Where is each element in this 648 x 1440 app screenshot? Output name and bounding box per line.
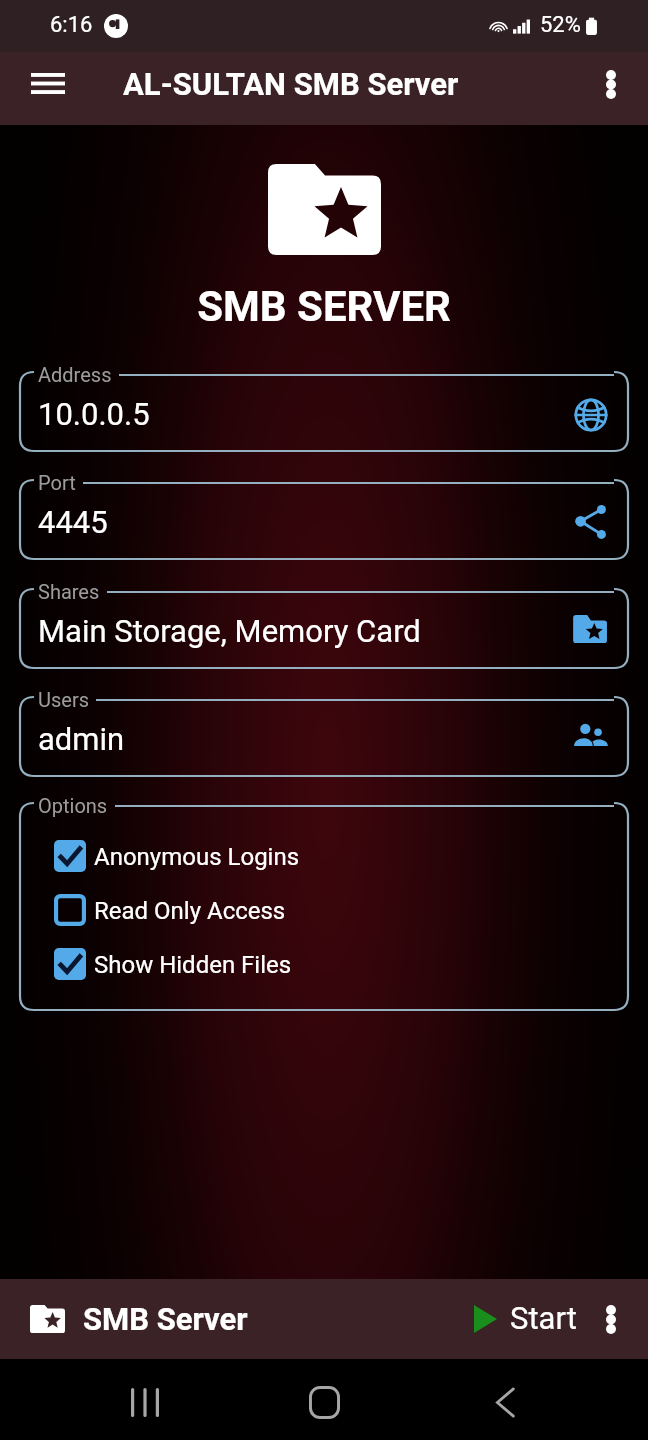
staticText: Address <box>38 363 112 386</box>
button[interactable]: Open navigation drawer <box>10 47 86 120</box>
staticText: AL-SULTAN SMB Server <box>123 66 459 102</box>
staticText: 6:16 <box>50 12 93 38</box>
button[interactable]: Start <box>474 1301 577 1337</box>
staticText: Start <box>510 1300 577 1336</box>
button[interactable]: Port <box>20 480 628 559</box>
staticText: Read Only Access <box>94 897 286 925</box>
button[interactable]: Home <box>289 1365 359 1435</box>
button[interactable]: Address <box>20 372 628 451</box>
button[interactable]: Back <box>470 1365 540 1435</box>
staticText: 4445 <box>38 504 108 540</box>
button[interactable]: Shares <box>20 589 628 668</box>
staticText: Options <box>38 794 108 817</box>
button[interactable]: Users <box>20 697 628 776</box>
staticText: Show Hidden Files <box>94 951 292 979</box>
staticText: Anonymous Logins <box>94 843 300 871</box>
staticText: Users <box>38 688 89 711</box>
staticText: 10.0.0.5 <box>38 396 150 432</box>
staticText: Port <box>38 471 76 494</box>
button[interactable]: More options <box>587 1295 635 1343</box>
staticText: Main Storage, Memory Card <box>38 613 421 649</box>
button[interactable]: Read Only Access <box>54 894 286 926</box>
button[interactable]: More options <box>583 56 639 112</box>
button[interactable]: Recent apps <box>110 1365 180 1435</box>
button[interactable]: Anonymous Logins <box>54 840 300 872</box>
staticText: admin <box>38 721 125 757</box>
staticText: 52% <box>540 12 581 38</box>
button[interactable]: SMB Server <box>24 1301 248 1337</box>
staticText: SMB Server <box>83 1301 248 1337</box>
staticText: Shares <box>38 580 100 603</box>
staticText: SMB SERVER <box>0 282 648 331</box>
button[interactable]: Show Hidden Files <box>54 948 292 980</box>
